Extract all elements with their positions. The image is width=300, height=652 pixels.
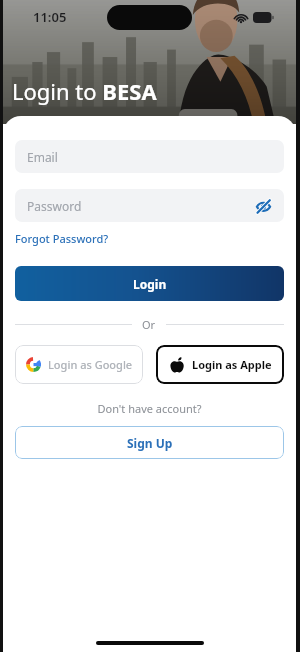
button[interactable]: Login bbox=[15, 266, 284, 301]
staticText: Login bbox=[133, 276, 167, 292]
staticText: Login as Apple bbox=[192, 357, 272, 372]
button[interactable]: Login as Google bbox=[15, 345, 143, 384]
staticText: Login to BESA bbox=[12, 76, 157, 106]
button[interactable]: Show password bbox=[253, 196, 273, 216]
staticText: Login as Google bbox=[48, 357, 133, 372]
button[interactable]: Sign Up bbox=[15, 426, 284, 459]
staticText: Password bbox=[27, 198, 82, 214]
staticText: Don't have account? bbox=[15, 401, 284, 416]
staticText: Or bbox=[142, 317, 156, 332]
staticText: Sign Up bbox=[127, 435, 173, 451]
button[interactable]: Forgot Password? bbox=[15, 231, 109, 246]
staticText: Forgot Password? bbox=[15, 231, 109, 246]
staticText: Email bbox=[27, 149, 58, 165]
button[interactable]: Login as Apple bbox=[156, 345, 284, 384]
staticText: 11:05 bbox=[33, 8, 67, 26]
button[interactable]: Email bbox=[15, 140, 284, 173]
button[interactable]: Password bbox=[15, 189, 284, 222]
